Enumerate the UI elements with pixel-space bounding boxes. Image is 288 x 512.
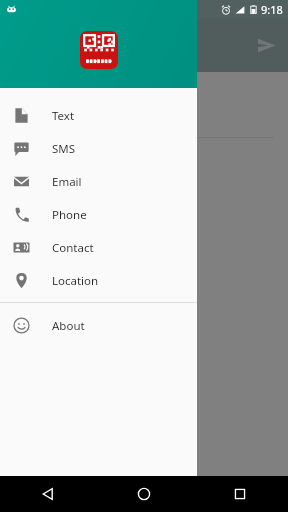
button[interactable]: Phone <box>0 198 197 231</box>
staticText: Location <box>52 273 99 289</box>
staticText: Email <box>52 174 82 190</box>
button[interactable]: SMS <box>0 132 197 165</box>
staticText: Text <box>52 108 75 124</box>
button[interactable]: Email <box>0 165 197 198</box>
button[interactable]: Location <box>0 264 197 297</box>
button[interactable]: Back <box>0 476 96 512</box>
button[interactable]: Contact <box>0 231 197 264</box>
staticText: Phone <box>52 207 87 223</box>
button[interactable]: QR Creator <box>80 31 118 69</box>
staticText: About <box>52 318 85 334</box>
staticText: Contact <box>52 240 94 256</box>
staticText: 9:18 <box>261 2 283 17</box>
button[interactable]: Home <box>96 476 192 512</box>
button[interactable]: Send <box>249 28 283 62</box>
staticText: SMS <box>52 141 76 157</box>
button[interactable]: Recents <box>192 476 288 512</box>
button[interactable]: Text <box>0 99 197 132</box>
button[interactable]: About <box>0 309 197 342</box>
